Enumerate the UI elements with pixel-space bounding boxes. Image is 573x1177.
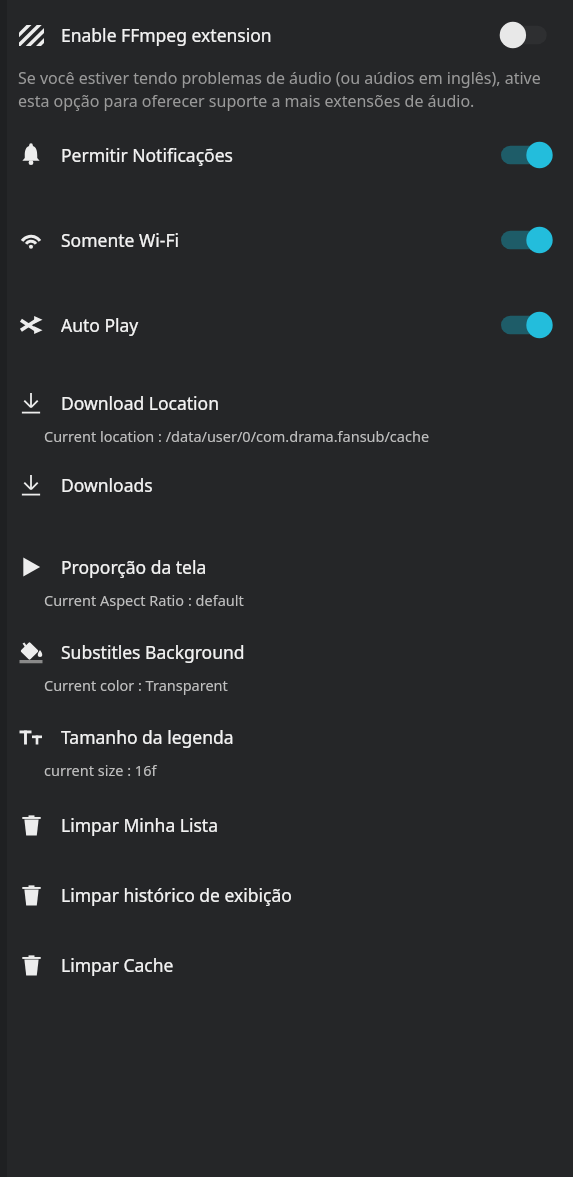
other: FFmpeg	[19, 23, 44, 48]
button[interactable]: Auto play shuffle	[0, 303, 573, 346]
staticText: Current location : /data/user/0/com.dram…	[44, 426, 430, 446]
other: Download	[19, 473, 43, 497]
other: Subtitles background	[19, 640, 44, 665]
staticText: Proporção da tela	[61, 555, 207, 579]
other: Caption size	[19, 725, 44, 750]
button[interactable]	[501, 140, 553, 170]
button[interactable]	[501, 225, 553, 255]
other: Aspect ratio	[19, 555, 43, 579]
button[interactable]	[501, 20, 553, 50]
other: Download	[19, 391, 43, 415]
button[interactable]: Delete	[0, 944, 573, 986]
staticText: Current Aspect Ratio : default	[44, 590, 244, 610]
staticText: Se você estiver tendo problemas de áudio…	[18, 67, 561, 112]
button[interactable]	[501, 310, 553, 340]
other: Auto play shuffle	[19, 313, 43, 337]
button[interactable]: Delete	[0, 804, 573, 846]
staticText: Substitles Background	[61, 640, 245, 664]
staticText: Current color : Transparent	[44, 675, 228, 695]
button[interactable]: Notifications	[0, 133, 573, 176]
other: Wi-Fi only	[19, 228, 43, 252]
other: Delete	[20, 954, 43, 977]
button[interactable]: Download	[0, 464, 573, 506]
button[interactable]: Download	[0, 382, 573, 424]
staticText: current size : 16f	[44, 760, 157, 780]
button[interactable]: Delete	[0, 874, 573, 916]
button[interactable]: FFmpeg	[0, 12, 573, 58]
staticText: Enable FFmpeg extension	[61, 23, 501, 47]
staticText: Limpar Minha Lista	[61, 813, 218, 837]
button[interactable]: Caption size	[0, 716, 573, 758]
staticText: Permitir Notificações	[61, 143, 501, 167]
button[interactable]: Wi-Fi only	[0, 218, 573, 261]
other: Notifications	[19, 143, 43, 167]
staticText: Tamanho da legenda	[61, 725, 234, 749]
staticText: Limpar histórico de exibição	[61, 883, 292, 907]
other: Delete	[20, 884, 43, 907]
staticText: Limpar Cache	[61, 953, 174, 977]
staticText: Auto Play	[61, 313, 501, 337]
staticText: Downloads	[61, 473, 153, 497]
staticText: Somente Wi-Fi	[61, 228, 501, 252]
other: Delete	[20, 814, 43, 837]
staticText: Download Location	[61, 391, 220, 415]
button[interactable]: Subtitles background	[0, 631, 573, 673]
button[interactable]: Aspect ratio	[0, 546, 573, 588]
